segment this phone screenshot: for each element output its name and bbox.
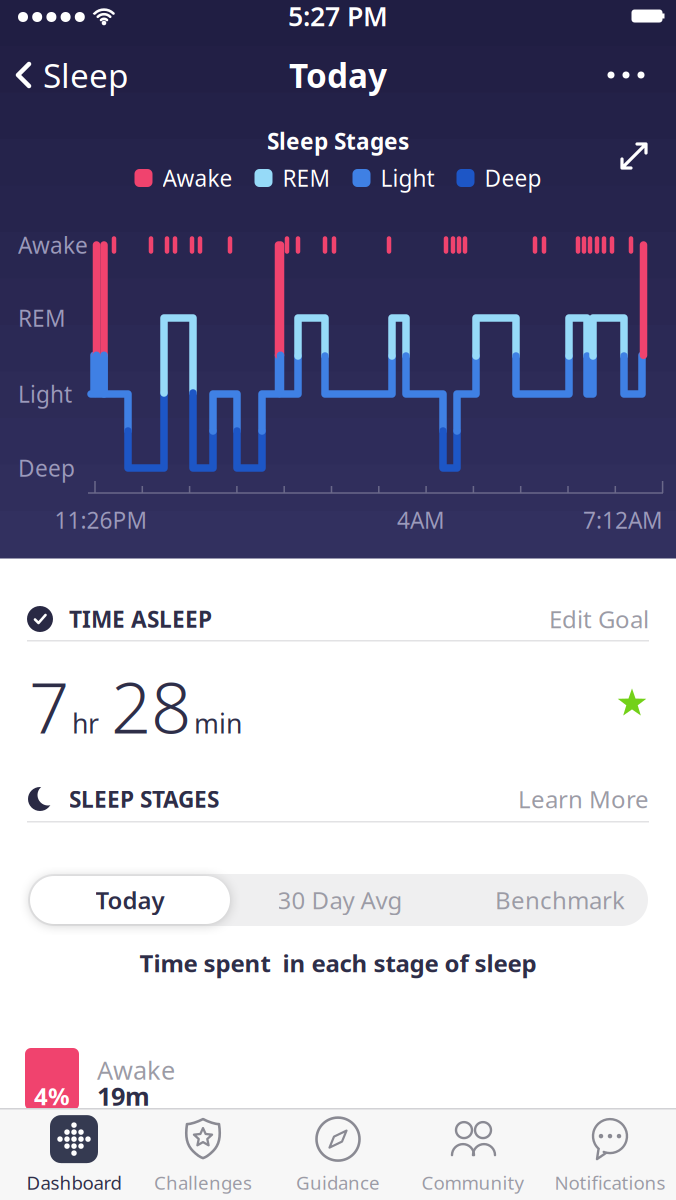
staticText: 4AM	[397, 505, 445, 535]
staticText: 5:27 PM	[288, 0, 388, 34]
button[interactable]: Community	[407, 1110, 539, 1198]
staticText: 7:12AM	[583, 505, 663, 535]
staticText: SLEEP STAGES	[69, 784, 219, 814]
button[interactable]: Sleep	[14, 53, 129, 97]
button[interactable]: Benchmark	[465, 876, 655, 924]
staticText: Benchmark	[495, 884, 625, 916]
staticText: Light	[18, 379, 72, 409]
staticText: 11:26PM	[54, 505, 147, 535]
button[interactable]: Notifications	[544, 1110, 676, 1198]
staticText: Sleep	[43, 53, 129, 97]
staticText: Light	[380, 163, 434, 193]
staticText: Sleep Stages	[267, 126, 409, 156]
staticText: Today	[289, 53, 387, 97]
staticText: Today	[95, 884, 164, 916]
staticText: Dashboard	[26, 1170, 121, 1195]
staticText: Edit Goal	[549, 603, 649, 635]
button[interactable]: Dashboard	[8, 1110, 140, 1198]
staticText: hr	[72, 705, 99, 741]
staticText: Challenges	[154, 1170, 252, 1195]
staticText: Guidance	[296, 1170, 380, 1195]
button[interactable]: 30 Day Avg	[245, 876, 435, 924]
button[interactable]: Edit Goal	[549, 603, 649, 635]
staticText: TIME ASLEEP	[69, 604, 212, 634]
staticText: Awake	[162, 163, 232, 193]
staticText: Deep	[484, 163, 541, 193]
staticText: min	[194, 705, 242, 741]
staticText: REM	[18, 303, 66, 333]
staticText: Awake	[97, 1053, 175, 1087]
staticText: 28	[111, 659, 191, 753]
button[interactable]: Expand chart	[617, 139, 651, 173]
staticText: 7	[29, 659, 69, 753]
staticText: 4%	[34, 1080, 70, 1112]
staticText: Awake	[18, 230, 88, 260]
staticText: Community	[421, 1170, 524, 1195]
staticText: Notifications	[554, 1170, 665, 1195]
staticText: 19m	[97, 1079, 150, 1113]
button[interactable]: Today	[30, 876, 230, 924]
staticText: Deep	[18, 453, 75, 483]
staticText: REM	[282, 163, 330, 193]
staticText: 30 Day Avg	[277, 884, 402, 916]
staticText: Learn More	[518, 783, 649, 815]
button[interactable]: More options	[598, 57, 654, 93]
staticText: Time spent in each stage of sleep	[139, 947, 536, 979]
button[interactable]: Guidance	[272, 1110, 404, 1198]
button[interactable]: Learn More	[518, 783, 649, 815]
button[interactable]: Challenges	[137, 1110, 269, 1198]
